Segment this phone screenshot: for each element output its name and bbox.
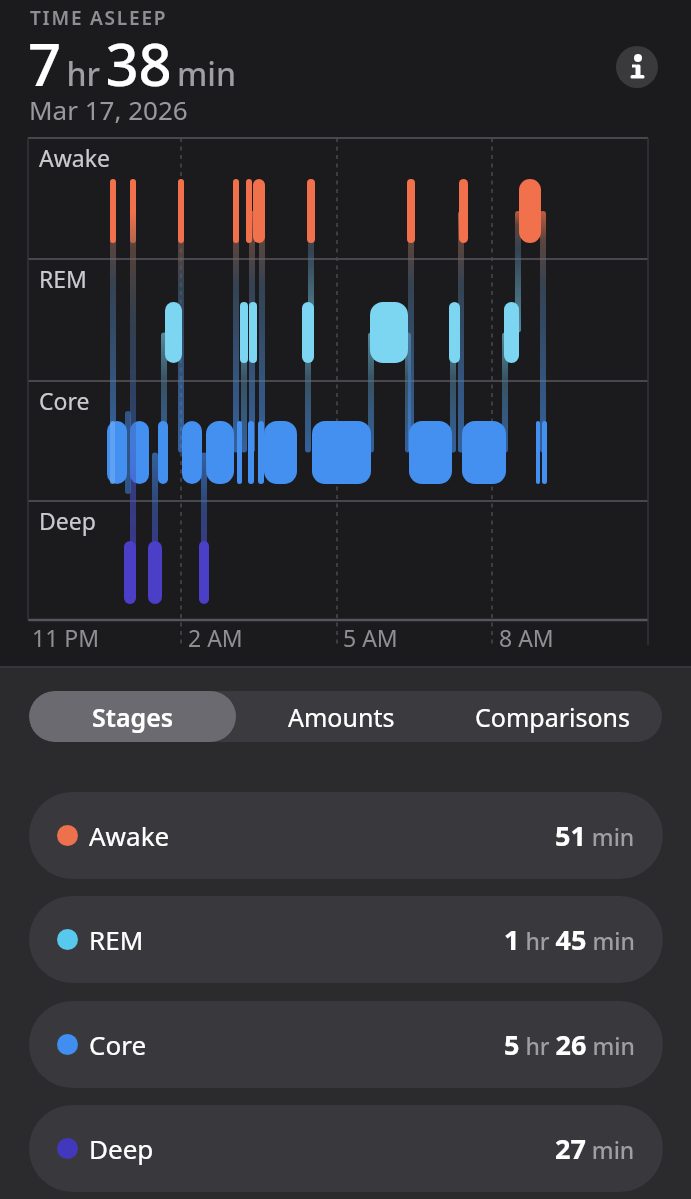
button[interactable]: Core: [29, 1001, 663, 1088]
staticText: 27 min: [555, 1130, 635, 1167]
staticText: 11 PM: [32, 622, 100, 653]
staticText: Core: [39, 385, 90, 416]
staticText: Awake: [39, 142, 110, 173]
staticText: TIME ASLEEP: [30, 5, 168, 31]
staticText: Core: [89, 1027, 147, 1062]
staticText: Mar 17, 2026: [29, 92, 188, 127]
button[interactable]: Deep: [29, 1105, 663, 1192]
staticText: 7 hr 38 min: [28, 24, 237, 103]
staticText: 5 AM: [343, 622, 398, 653]
staticText: REM: [89, 922, 144, 957]
staticText: 51 min: [555, 817, 635, 854]
staticText: Deep: [39, 505, 96, 536]
button[interactable]: Amounts: [236, 691, 447, 742]
staticText: Awake: [89, 818, 170, 853]
staticText: 1 hr 45 min: [504, 921, 635, 958]
staticText: Amounts: [288, 700, 395, 734]
staticText: Comparisons: [475, 700, 631, 734]
staticText: REM: [39, 263, 87, 294]
staticText: 5 hr 26 min: [504, 1026, 635, 1063]
staticText: Deep: [89, 1131, 154, 1166]
button[interactable]: [616, 46, 658, 88]
staticText: Stages: [92, 700, 174, 734]
button[interactable]: Stages: [29, 691, 236, 742]
staticText: 8 AM: [499, 622, 554, 653]
button[interactable]: Awake: [29, 792, 663, 879]
staticText: 2 AM: [188, 622, 243, 653]
button[interactable]: REM: [29, 896, 663, 983]
button[interactable]: Comparisons: [447, 691, 658, 742]
